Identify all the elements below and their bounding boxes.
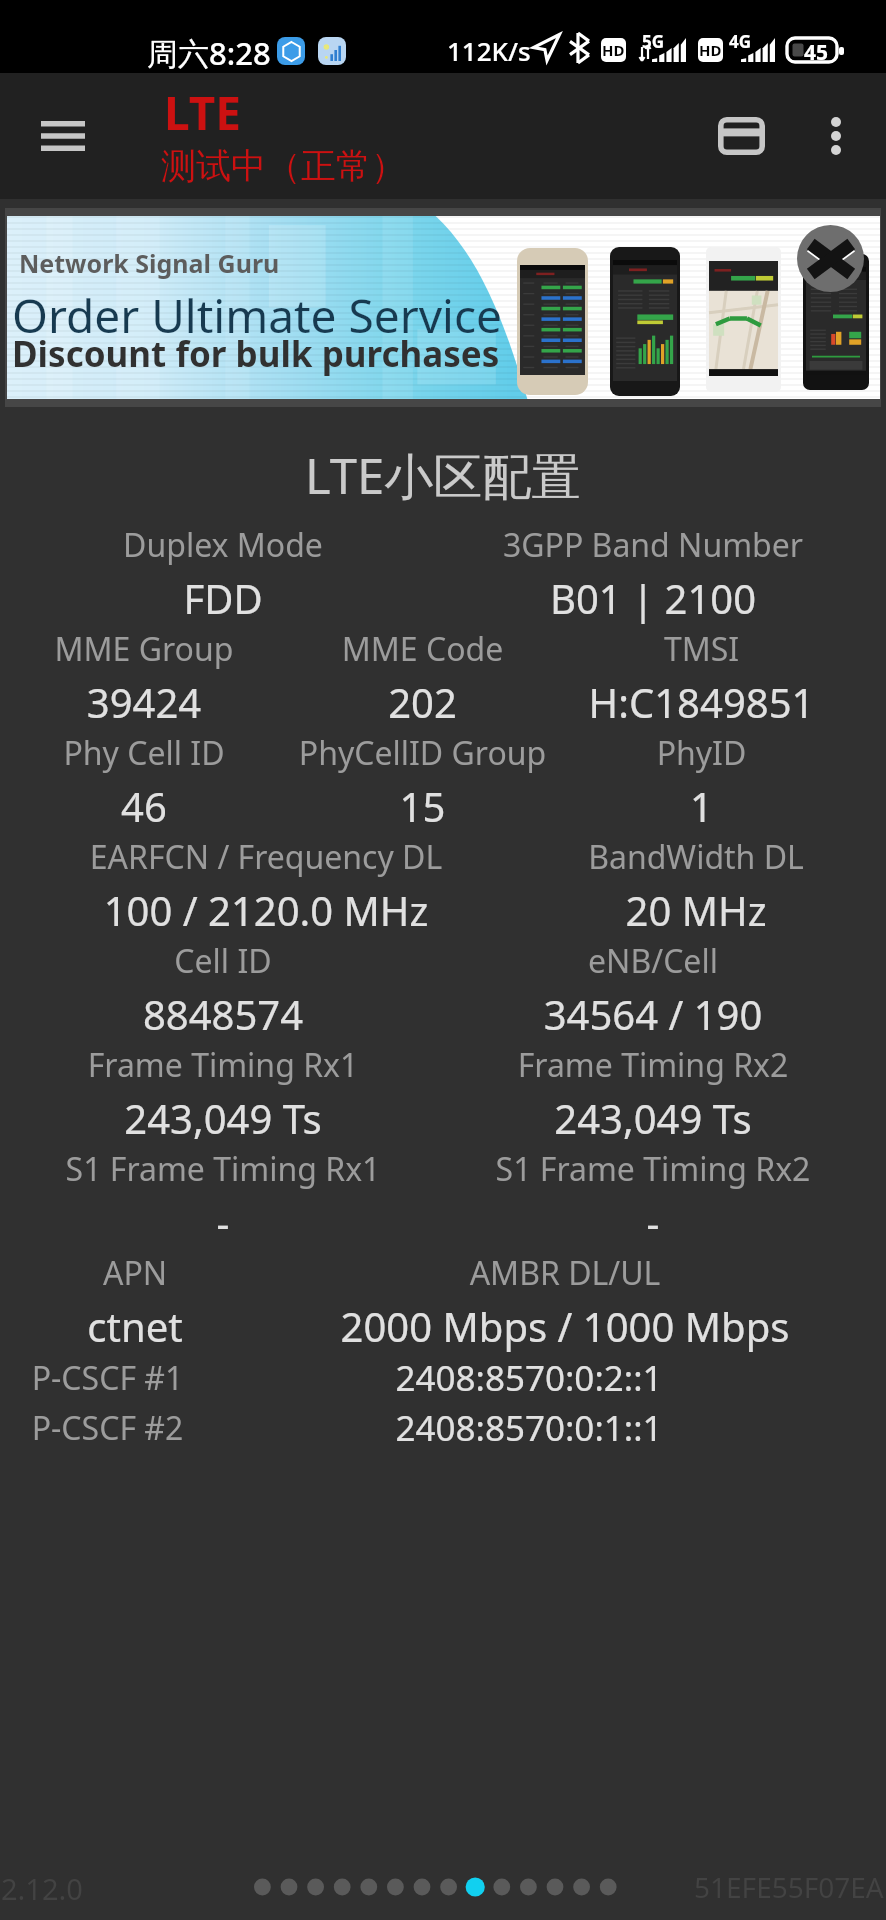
staticText: HD [602, 40, 625, 60]
staticText: 周六8:28 [147, 32, 271, 74]
staticText: P-CSCF #1 [8, 1356, 207, 1400]
staticText: 243,049 Ts [8, 1091, 438, 1145]
staticText: S1 Frame Timing Rx2 [438, 1147, 868, 1191]
staticText: ctnet [8, 1299, 262, 1353]
staticText: PhyID [562, 731, 841, 775]
staticText: LTE小区配置 [305, 442, 581, 509]
button[interactable]: More options [793, 91, 879, 181]
staticText: 20 MHz [524, 883, 868, 937]
staticText: PhyCellID Group [283, 731, 562, 775]
staticText: Frame Timing Rx1 [8, 1043, 438, 1087]
staticText: 112K/s [447, 33, 531, 68]
staticText: Cell ID [8, 939, 438, 983]
button[interactable]: Network Signal Guru [7, 216, 880, 399]
staticText: Phy Cell ID [5, 731, 283, 775]
staticText: Order Ultimate Service [12, 284, 502, 347]
staticText: 100 / 2120.0 MHz [8, 883, 524, 937]
staticText: 4G [729, 30, 752, 53]
staticText: 5G [642, 30, 665, 53]
staticText: 34564 / 190 [438, 987, 868, 1041]
staticText: APN [8, 1251, 262, 1295]
staticText: Network Signal Guru [19, 246, 280, 280]
staticText: MME Code [283, 627, 562, 671]
staticText: - [8, 1195, 438, 1249]
staticText: H:C1849851 [562, 675, 841, 729]
staticText: 243,049 Ts [438, 1091, 868, 1145]
staticText: Frame Timing Rx2 [438, 1043, 868, 1087]
staticText: 8848574 [8, 987, 438, 1041]
staticText: 15 [283, 779, 562, 833]
staticText: 1 [562, 779, 841, 833]
staticText: 测试中（正常） [161, 144, 406, 188]
staticText: 2000 Mbps / 1000 Mbps [262, 1299, 868, 1353]
button[interactable]: Layout mode [697, 91, 786, 181]
staticText: MME Group [5, 627, 283, 671]
staticText: P-CSCF #2 [8, 1406, 207, 1450]
staticText: 39424 [5, 675, 283, 729]
button[interactable]: Close advertisement [797, 225, 864, 292]
staticText: 2408:8570:0:2::1 [207, 1354, 851, 1402]
staticText: HD [699, 40, 722, 60]
staticText: 2.12.0 [1, 1869, 83, 1908]
button[interactable]: Navigation menu [20, 93, 106, 179]
staticText: Duplex Mode [8, 523, 438, 567]
staticText: 202 [283, 675, 562, 729]
staticText: FDD [8, 571, 438, 625]
staticText: 2408:8570:0:1::1 [207, 1404, 851, 1452]
staticText: eNB/Cell [438, 939, 868, 983]
staticText: 51EFE55F07EA [694, 1868, 884, 1906]
staticText: B01 | 2100 [438, 571, 868, 625]
staticText: AMBR DL/UL [262, 1251, 868, 1295]
staticText: 46 [5, 779, 283, 833]
staticText: S1 Frame Timing Rx1 [8, 1147, 438, 1191]
staticText: 45 [804, 38, 829, 62]
staticText: LTE [164, 81, 242, 144]
staticText: Discount for bulk purchases [12, 330, 500, 378]
staticText: TMSI [562, 627, 841, 671]
staticText: - [438, 1195, 868, 1249]
staticText: BandWidth DL [524, 835, 868, 879]
staticText: EARFCN / Frequency DL [8, 835, 524, 879]
staticText: 3GPP Band Number [438, 523, 868, 567]
